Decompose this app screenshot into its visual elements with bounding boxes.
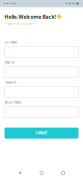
staticText: Hello, Welcome Back! [4,13,55,20]
staticText: 👋 [56,14,62,19]
staticText: Password [4,81,16,84]
staticText: Please fill all the details [4,22,34,26]
staticText: Full Name [4,41,17,44]
staticText: SUBMIT [35,131,47,135]
button[interactable]: Home [40,171,43,175]
staticText: School Name [4,101,21,104]
button[interactable]: SUBMIT [4,128,78,139]
button[interactable]: Back [18,171,21,175]
staticText: Email ID [4,61,14,64]
